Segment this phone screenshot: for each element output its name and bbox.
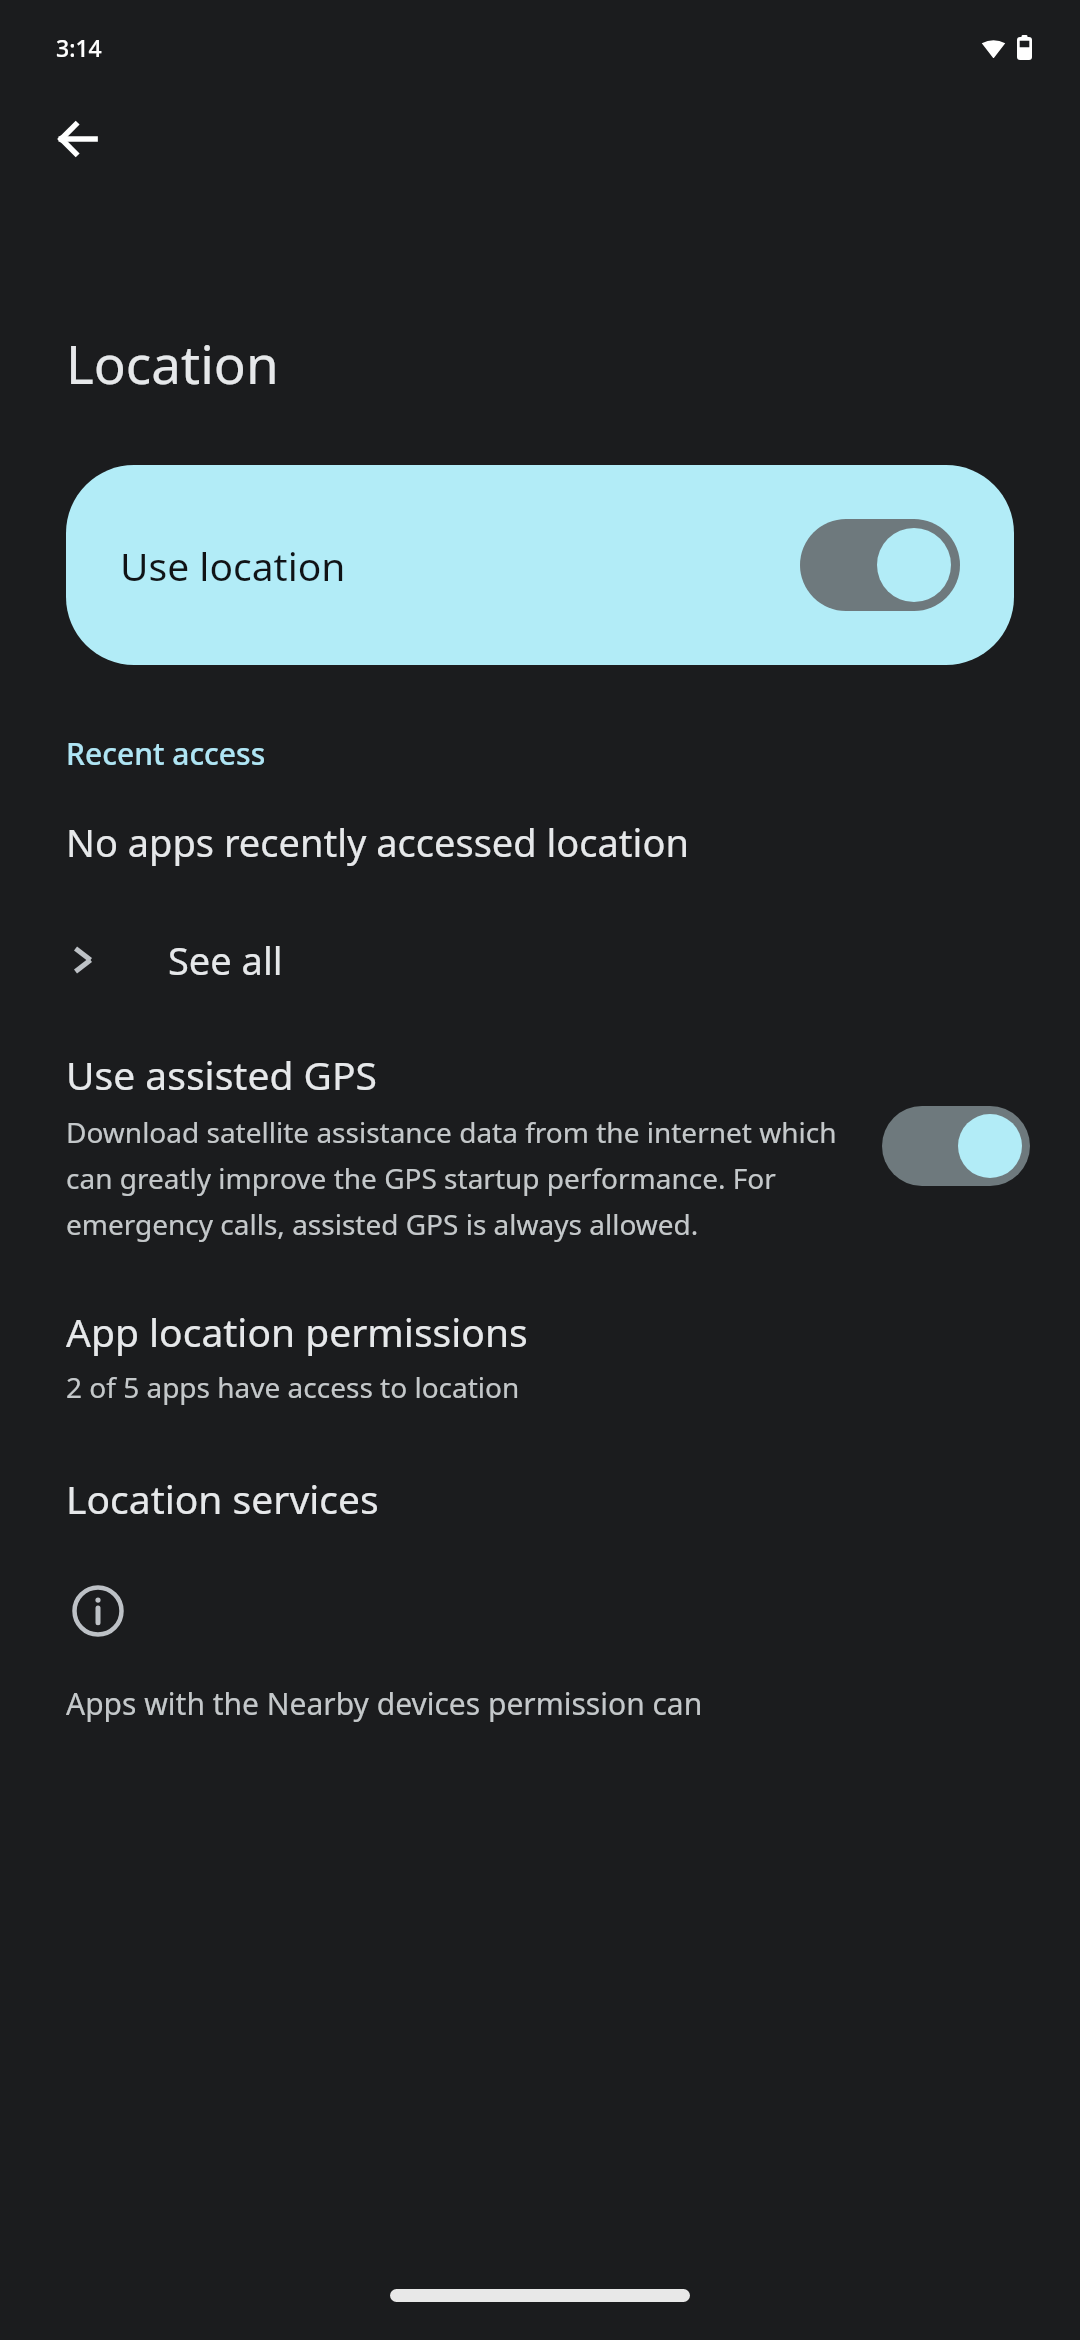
staticText: Recent access <box>66 733 266 774</box>
button[interactable]: Back <box>34 95 122 183</box>
button[interactable]: Use assisted GPS toggle <box>882 1106 1030 1186</box>
button[interactable]: Use location <box>66 465 1014 665</box>
staticText: App location permissions <box>66 1305 528 1358</box>
staticText: No apps recently accessed location <box>66 816 689 868</box>
staticText: Download satellite assistance data from … <box>66 1113 852 1243</box>
button[interactable]: See all <box>0 912 1080 1008</box>
button[interactable]: App location permissions <box>0 1305 1080 1406</box>
staticText: Use location <box>120 539 800 592</box>
staticText: Use assisted GPS <box>66 1048 377 1101</box>
staticText: Apps with the Nearby devices permission … <box>66 1683 703 1724</box>
staticText: Location <box>66 327 279 399</box>
other: Information <box>72 1585 124 1637</box>
button[interactable]: Location services <box>0 1472 1080 1525</box>
staticText: 3:14 <box>56 32 102 63</box>
staticText: 2 of 5 apps have access to location <box>66 1368 520 1406</box>
staticText: See all <box>168 934 283 986</box>
button[interactable]: Use assisted GPS <box>0 1048 1080 1243</box>
